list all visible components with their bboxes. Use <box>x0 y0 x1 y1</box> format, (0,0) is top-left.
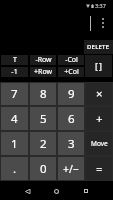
staticText: 3 <box>68 136 75 152</box>
staticText: 5 <box>40 111 47 127</box>
button[interactable]: +Col <box>58 67 84 77</box>
button[interactable]: . <box>1 157 28 180</box>
button[interactable]: Recents <box>76 182 96 200</box>
staticText: 0 <box>40 161 47 177</box>
button[interactable]: 5 <box>30 107 56 130</box>
staticText: 1 <box>11 136 18 152</box>
staticText: DELETE <box>87 43 110 51</box>
staticText: -1 <box>11 67 18 77</box>
staticText: -Row <box>35 55 52 65</box>
staticText: T <box>13 55 17 65</box>
staticText: [ ] <box>95 60 102 72</box>
staticText: 3:37 <box>95 2 106 9</box>
button[interactable]: +Row <box>30 67 56 77</box>
staticText: 9 <box>68 86 75 102</box>
button[interactable]: 6 <box>58 107 84 130</box>
button[interactable]: 0 <box>30 157 56 180</box>
button[interactable]: Home <box>46 182 66 200</box>
staticText: . <box>13 161 17 177</box>
staticText: +/− <box>63 162 79 176</box>
button[interactable]: Move <box>86 132 112 155</box>
button[interactable]: -Row <box>30 55 56 65</box>
button[interactable]: T <box>1 55 28 65</box>
button[interactable]: +/− <box>58 157 84 180</box>
button[interactable]: [ ] <box>85 55 112 77</box>
staticText: Move <box>91 139 108 148</box>
button[interactable]: 1 <box>1 132 28 155</box>
button[interactable]: = <box>86 157 112 180</box>
staticText: -Col <box>65 55 78 65</box>
staticText: 6 <box>68 111 75 127</box>
button[interactable]: 9 <box>58 83 84 105</box>
staticText: 8 <box>40 86 47 102</box>
staticText: = <box>96 161 103 177</box>
staticText: 7 <box>11 86 18 102</box>
button[interactable]: × <box>86 83 112 105</box>
button[interactable]: 8 <box>30 83 56 105</box>
staticText: + <box>96 111 103 127</box>
button[interactable]: Back <box>17 182 37 200</box>
button[interactable]: 3 <box>58 132 84 155</box>
staticText: 2 <box>40 136 47 152</box>
button[interactable]: DELETE <box>84 40 113 54</box>
button[interactable]: 7 <box>1 83 28 105</box>
button[interactable]: 4 <box>1 107 28 130</box>
button[interactable]: -1 <box>1 67 28 77</box>
button[interactable]: + <box>86 107 112 130</box>
staticText: × <box>96 86 103 102</box>
staticText: 4 <box>11 111 18 127</box>
button[interactable]: -Col <box>58 55 84 65</box>
button[interactable]: 2 <box>30 132 56 155</box>
button[interactable]: More options <box>96 13 110 33</box>
staticText: +Row <box>34 67 52 77</box>
staticText: +Col <box>64 67 79 77</box>
